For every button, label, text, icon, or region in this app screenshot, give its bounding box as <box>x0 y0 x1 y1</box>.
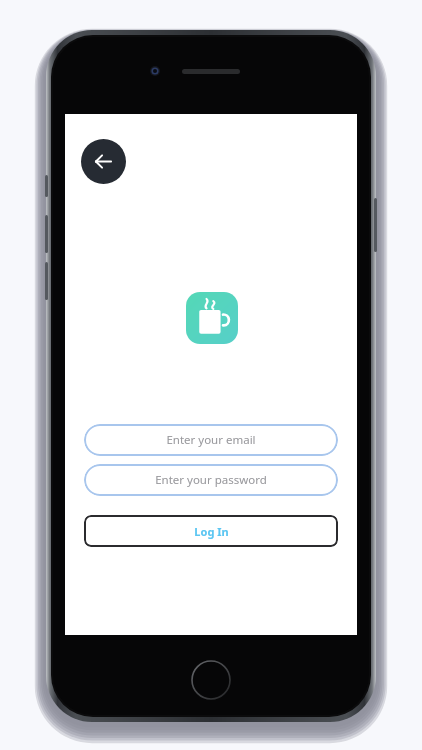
staticText: Log In <box>194 524 229 539</box>
button[interactable]: Back <box>81 139 126 184</box>
button[interactable]: Enter your password <box>84 464 338 496</box>
button[interactable]: Enter your email <box>84 424 338 456</box>
button[interactable]: Log In <box>84 515 338 547</box>
staticText: Enter your password <box>155 472 267 488</box>
staticText: Enter your email <box>166 432 256 448</box>
